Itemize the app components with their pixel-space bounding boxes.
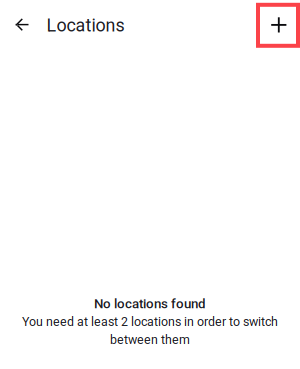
button[interactable]: Add location: [258, 5, 298, 46]
staticText: You need at least 2 locations in order t…: [22, 314, 278, 329]
staticText: No locations found: [94, 296, 206, 312]
button[interactable]: Back: [0, 0, 43, 50]
staticText: Locations: [46, 15, 124, 36]
staticText: between them: [110, 332, 190, 347]
